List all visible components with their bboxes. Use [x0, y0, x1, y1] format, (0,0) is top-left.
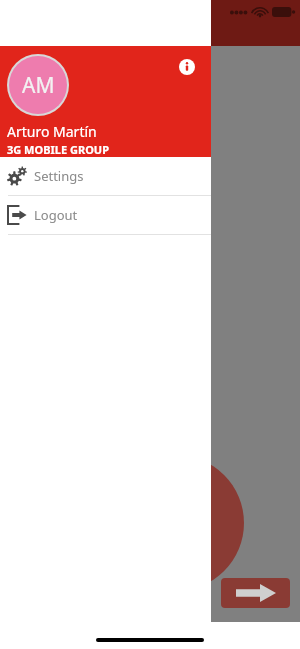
staticText: Settings	[34, 167, 84, 185]
button[interactable]: AM	[9, 56, 67, 114]
staticText: Arturo Martín	[7, 122, 97, 141]
staticText: AM	[22, 71, 55, 100]
staticText: 3G MOBILE GROUP	[7, 142, 109, 157]
button[interactable]: Settings	[0, 157, 211, 195]
button[interactable]: CHECK OUT	[108, 455, 244, 591]
button[interactable]: Next	[221, 578, 290, 608]
button[interactable]: Logout	[0, 196, 211, 234]
button[interactable]: Information	[176, 56, 198, 78]
staticText: Logout	[34, 206, 78, 224]
